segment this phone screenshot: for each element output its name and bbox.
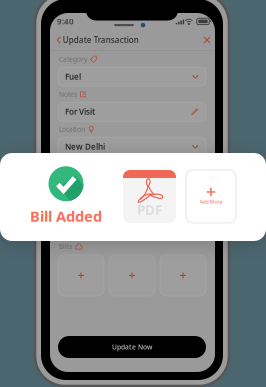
button[interactable]: Update Now [58, 336, 206, 358]
staticText: PDF [137, 201, 162, 219]
button[interactable]: PDF attachment [123, 170, 176, 223]
staticText: Add More [199, 198, 222, 205]
staticText: New Delhi [65, 141, 105, 152]
button[interactable]: Add bill [58, 255, 104, 296]
button[interactable]: For Visit [58, 102, 206, 121]
staticText: Update Transaction [63, 35, 139, 45]
button[interactable]: Update Transaction [55, 31, 141, 49]
button[interactable]: Add bill [109, 255, 155, 296]
staticText: Fuel [65, 71, 81, 82]
staticText: Bills [59, 242, 72, 251]
staticText: 9:40 [57, 16, 74, 27]
staticText: Bill Added [30, 206, 102, 226]
staticText: For Visit [65, 106, 95, 117]
staticText: Location [59, 125, 85, 134]
button[interactable]: New Delhi [58, 137, 206, 156]
button[interactable]: Close [200, 33, 214, 47]
button[interactable]: Add bill [160, 255, 206, 296]
staticText: Update Now [112, 343, 152, 351]
staticText: Category [59, 55, 87, 64]
staticText: Notes [59, 90, 77, 99]
button[interactable]: Add More [186, 170, 236, 223]
button[interactable]: Fuel [58, 67, 206, 86]
